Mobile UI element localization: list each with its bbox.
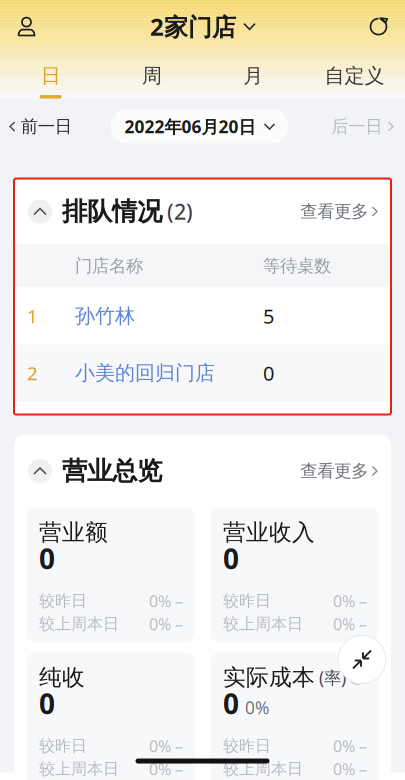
- staticText: 0%: [333, 590, 355, 612]
- staticText: 0: [263, 360, 274, 386]
- button[interactable]: 月: [202, 49, 304, 99]
- staticText: 0: [39, 540, 55, 577]
- button[interactable]: 2家门店: [150, 3, 255, 49]
- staticText: 5: [263, 303, 274, 329]
- staticText: 2: [27, 361, 38, 385]
- button[interactable]: 查看更多: [300, 460, 377, 482]
- staticText: 查看更多: [300, 201, 368, 222]
- staticText: 较昨日: [223, 736, 271, 756]
- button[interactable]: 周: [101, 49, 202, 99]
- staticText: i: [355, 669, 358, 685]
- button[interactable]: 1: [14, 287, 391, 344]
- staticText: 0%: [245, 696, 269, 719]
- staticText: 门店名称: [75, 255, 143, 277]
- staticText: 0%: [149, 590, 171, 612]
- button[interactable]: 2: [14, 344, 391, 401]
- staticText: (率): [319, 666, 346, 689]
- staticText: 0%: [149, 758, 171, 780]
- button[interactable]: 查看更多: [300, 201, 377, 222]
- staticText: 2家门店: [150, 11, 236, 42]
- staticText: –: [355, 590, 367, 612]
- staticText: 自定义: [324, 63, 384, 88]
- staticText: –: [355, 735, 367, 757]
- staticText: 孙竹林: [75, 304, 135, 328]
- staticText: –: [355, 613, 367, 635]
- staticText: 等待桌数: [263, 255, 331, 277]
- staticText: (2): [167, 197, 193, 226]
- button[interactable]: 后一日: [331, 109, 405, 143]
- staticText: 营业总览: [62, 455, 162, 486]
- staticText: 排队情况: [62, 196, 162, 227]
- staticText: 较上周本日: [223, 759, 303, 779]
- staticText: –: [171, 590, 183, 612]
- staticText: 0%: [149, 735, 171, 757]
- staticText: 0: [223, 540, 239, 577]
- staticText: 0: [223, 685, 239, 722]
- staticText: 较上周本日: [39, 759, 119, 779]
- staticText: 周: [142, 63, 162, 88]
- staticText: –: [171, 735, 183, 757]
- staticText: 查看更多: [300, 460, 368, 482]
- button[interactable]: Collapse: [28, 199, 52, 223]
- staticText: 0: [39, 685, 55, 722]
- staticText: 营业收入: [223, 519, 315, 546]
- button[interactable]: Profile: [0, 3, 53, 49]
- button[interactable]: Collapse all: [338, 635, 386, 683]
- staticText: 较昨日: [223, 591, 271, 611]
- staticText: –: [171, 758, 183, 780]
- button[interactable]: 日: [0, 49, 101, 99]
- staticText: 小美的回归门店: [75, 361, 215, 385]
- staticText: –: [171, 613, 183, 635]
- button[interactable]: 2022年06月20日: [110, 109, 288, 143]
- staticText: 较昨日: [39, 736, 87, 756]
- staticText: 较上周本日: [223, 614, 303, 634]
- staticText: 0%: [149, 613, 171, 635]
- staticText: 后一日: [331, 116, 382, 137]
- staticText: 0%: [333, 735, 355, 757]
- staticText: 日: [41, 63, 61, 88]
- staticText: 前一日: [21, 116, 72, 137]
- staticText: 较上周本日: [39, 614, 119, 634]
- staticText: 0%: [333, 758, 355, 780]
- staticText: 月: [243, 63, 263, 88]
- button[interactable]: 自定义: [304, 49, 405, 99]
- staticText: 营业额: [39, 519, 108, 546]
- button[interactable]: 前一日: [0, 109, 72, 143]
- staticText: 2022年06月20日: [124, 115, 255, 138]
- button[interactable]: Refresh: [352, 3, 405, 49]
- staticText: 纯收: [39, 664, 85, 691]
- staticText: 0%: [333, 613, 355, 635]
- button[interactable]: Collapse: [28, 459, 52, 483]
- staticText: –: [355, 758, 367, 780]
- staticText: 1: [27, 304, 38, 328]
- staticText: 较昨日: [39, 591, 87, 611]
- staticText: 实际成本: [223, 664, 315, 691]
